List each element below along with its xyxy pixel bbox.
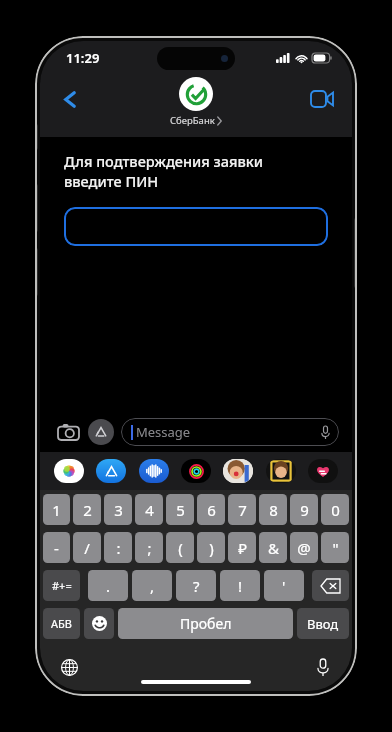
staticText: Ввод	[307, 615, 339, 633]
staticText: -	[54, 538, 59, 558]
staticText: @	[297, 538, 311, 558]
staticText: (	[178, 538, 183, 558]
staticText: '	[282, 576, 286, 596]
staticText: )	[209, 538, 214, 558]
staticText: ;	[147, 538, 152, 558]
staticText: ?	[193, 576, 200, 596]
button[interactable]: 5	[166, 494, 194, 525]
staticText: 7	[238, 500, 247, 520]
staticText: СберБанк	[170, 114, 215, 127]
button[interactable]: '	[264, 570, 304, 601]
button[interactable]: ?	[176, 570, 216, 601]
button[interactable]: !	[220, 570, 260, 601]
button[interactable]: Camera	[53, 417, 83, 447]
staticText: 2	[83, 500, 92, 520]
staticText: ₽	[238, 538, 247, 558]
button[interactable]: Ввод	[297, 608, 349, 639]
button[interactable]: -	[43, 532, 70, 563]
button[interactable]: Message	[121, 418, 339, 446]
staticText: /	[84, 538, 90, 558]
button[interactable]: App Store apps	[88, 419, 114, 445]
button[interactable]: 3	[104, 494, 132, 525]
button[interactable]: @	[290, 532, 318, 563]
button[interactable]: 6	[197, 494, 225, 525]
button[interactable]: )	[197, 532, 225, 563]
button[interactable]	[64, 207, 328, 246]
button[interactable]: Backspace	[312, 570, 349, 601]
button[interactable]: App	[264, 458, 298, 484]
staticText: 4	[145, 500, 154, 520]
staticText: 11:29	[66, 49, 100, 67]
button[interactable]: /	[73, 532, 101, 563]
button[interactable]: Dictation	[308, 652, 338, 682]
button[interactable]: ₽	[228, 532, 256, 563]
staticText: 9	[300, 500, 309, 520]
staticText: 5	[176, 500, 185, 520]
button[interactable]: 4	[135, 494, 163, 525]
staticText: "	[332, 538, 339, 558]
button[interactable]: :	[104, 532, 132, 563]
staticText: 3	[114, 500, 123, 520]
staticText: Для подтверждения заявки введите ПИН	[64, 151, 264, 191]
staticText: 1	[52, 500, 61, 520]
button[interactable]: App	[52, 458, 86, 484]
staticText: Пробел	[180, 614, 232, 633]
staticText: Message	[136, 423, 191, 441]
staticText: :	[116, 538, 121, 558]
staticText: .	[106, 576, 111, 596]
button[interactable]: App	[94, 458, 128, 484]
button[interactable]: (	[166, 532, 194, 563]
button[interactable]: App	[179, 458, 213, 484]
button[interactable]: App	[137, 458, 171, 484]
button[interactable]: App	[221, 458, 255, 484]
button[interactable]: Пробел	[118, 608, 293, 639]
staticText: !	[238, 576, 243, 596]
button[interactable]: 0	[321, 494, 349, 525]
staticText: 0	[331, 500, 340, 520]
button[interactable]: "	[321, 532, 349, 563]
button[interactable]: 7	[228, 494, 256, 525]
button[interactable]: СберБанк	[170, 77, 222, 127]
button[interactable]: 2	[73, 494, 101, 525]
staticText: ,	[150, 576, 155, 596]
button[interactable]: ;	[135, 532, 163, 563]
button[interactable]: АБВ	[43, 608, 80, 639]
staticText: 6	[207, 500, 216, 520]
button[interactable]: ,	[132, 570, 172, 601]
staticText: АБВ	[51, 616, 72, 631]
button[interactable]: 1	[43, 494, 70, 525]
staticText: 8	[269, 500, 278, 520]
button[interactable]: 8	[259, 494, 287, 525]
staticText: &	[268, 538, 279, 558]
button[interactable]: FaceTime video call	[302, 79, 342, 119]
button[interactable]: &	[259, 532, 287, 563]
button[interactable]: Back	[50, 79, 90, 119]
staticText: #+=	[52, 578, 72, 593]
button[interactable]: #+=	[43, 570, 80, 601]
button[interactable]: 9	[290, 494, 318, 525]
button[interactable]: Emoji	[84, 608, 114, 639]
button[interactable]: App	[306, 458, 340, 484]
button[interactable]: Change keyboard language	[54, 652, 84, 682]
button[interactable]: .	[88, 570, 128, 601]
